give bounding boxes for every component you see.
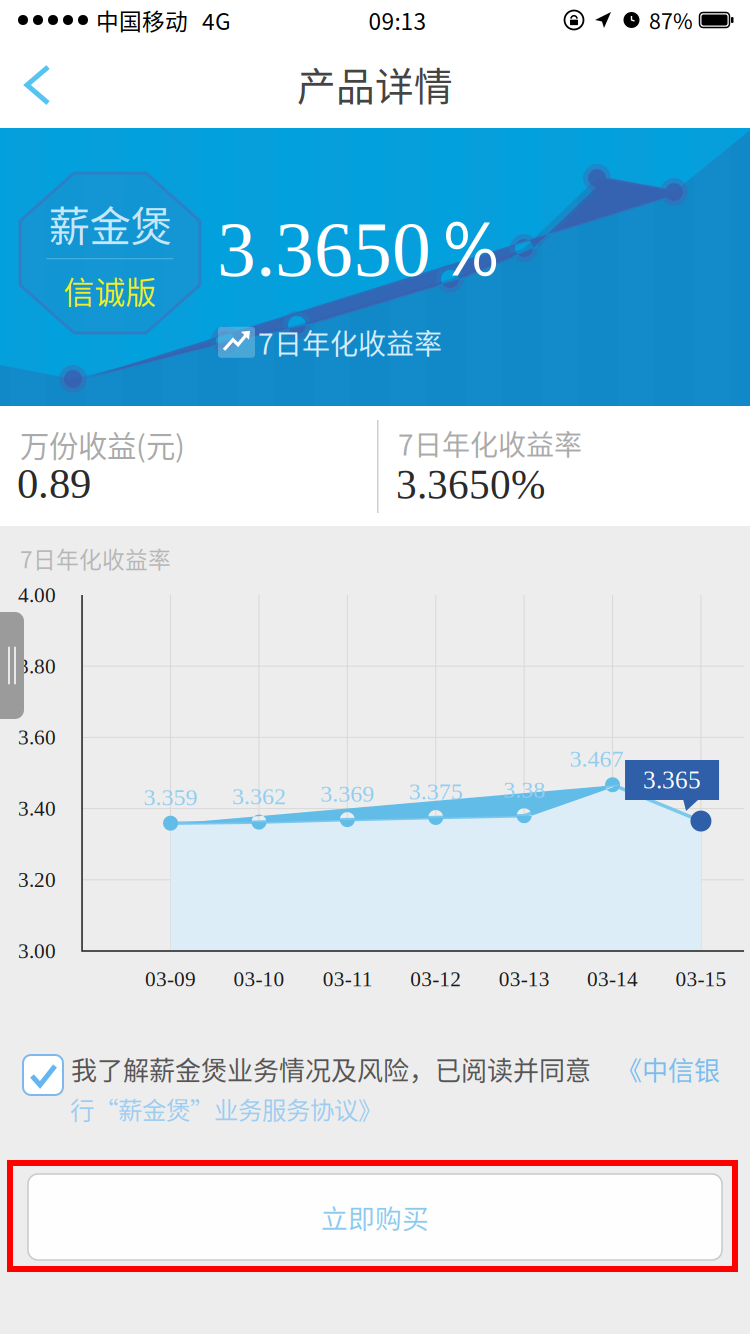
staticText: 中国移动: [96, 4, 188, 36]
staticText: 3.80: [18, 654, 56, 678]
staticText: 7日年化收益率: [398, 423, 582, 463]
staticText: 03-10: [233, 967, 284, 991]
staticText: 03-12: [410, 967, 461, 991]
button[interactable]: 返回: [0, 40, 72, 128]
staticText: 3.359: [143, 784, 197, 810]
button[interactable]: 同意协议: [23, 1055, 63, 1095]
staticText: 行“薪金煲”业务服务协议》: [70, 1091, 382, 1126]
staticText: 3.365: [643, 766, 701, 794]
staticText: 3.362: [232, 783, 286, 809]
staticText: 3.3650％: [217, 201, 508, 298]
staticText: 立即购买: [321, 1198, 429, 1236]
staticText: 03-15: [675, 967, 726, 991]
staticText: 3.38: [503, 776, 545, 803]
staticText: 3.467: [569, 745, 623, 772]
staticText: 产品详情: [297, 56, 453, 112]
button[interactable]: 《中信银: [0, 1052, 720, 1088]
staticText: 4.00: [18, 583, 56, 607]
button[interactable]: 行“薪金煲”业务服务协议》: [0, 1052, 382, 1126]
staticText: 3.20: [18, 868, 56, 892]
staticText: 03-09: [145, 967, 196, 991]
staticText: 87%: [649, 5, 693, 35]
staticText: 3.3650%: [396, 462, 545, 508]
staticText: 3.60: [18, 726, 56, 749]
staticText: 信诚版: [63, 268, 156, 313]
staticText: 3.40: [18, 797, 56, 820]
button[interactable]: 展开侧边栏: [0, 612, 24, 719]
staticText: 09:13: [368, 4, 426, 36]
staticText: 03-11: [323, 967, 372, 991]
staticText: 3.00: [18, 939, 56, 963]
staticText: 7日年化收益率: [258, 322, 442, 362]
staticText: 03-14: [587, 967, 638, 991]
staticText: 7日年化收益率: [20, 542, 171, 575]
staticText: 0.89: [17, 460, 91, 507]
staticText: 3.369: [320, 780, 374, 807]
staticText: 4G: [202, 4, 231, 36]
staticText: 03-13: [499, 967, 550, 991]
staticText: 万份收益(元): [20, 423, 185, 465]
staticText: 薪金煲: [48, 193, 171, 253]
staticText: 《中信银: [616, 1050, 720, 1088]
button[interactable]: 立即购买: [28, 1174, 722, 1260]
staticText: 我了解薪金煲业务情况及风险，已阅读并同意: [71, 1050, 591, 1088]
staticText: 3.375: [409, 778, 463, 805]
